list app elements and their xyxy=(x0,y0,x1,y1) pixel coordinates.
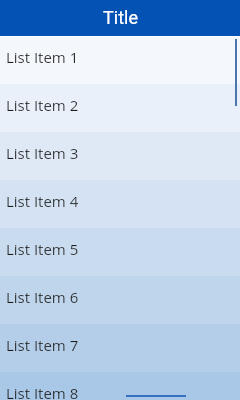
button[interactable]: List Item 6 xyxy=(0,276,240,324)
button[interactable]: List Item 3 xyxy=(0,132,240,180)
button[interactable]: List Item 2 xyxy=(0,84,240,132)
staticText: List Item 1 xyxy=(6,47,79,67)
staticText: List Item 5 xyxy=(6,239,79,259)
staticText: List Item 8 xyxy=(6,383,79,400)
button[interactable]: List Item 5 xyxy=(0,228,240,276)
button[interactable]: List Item 1 xyxy=(0,36,240,84)
button[interactable]: List Item 7 xyxy=(0,324,240,372)
staticText: List Item 6 xyxy=(6,287,79,307)
button[interactable]: List Item 4 xyxy=(0,180,240,228)
staticText: List Item 7 xyxy=(6,335,79,355)
staticText: List Item 2 xyxy=(6,95,79,115)
staticText: Title xyxy=(103,7,138,28)
staticText: List Item 3 xyxy=(6,143,79,163)
button[interactable]: List Item 8 xyxy=(0,372,240,400)
button[interactable]: Title xyxy=(0,0,240,36)
staticText: List Item 4 xyxy=(6,191,79,211)
